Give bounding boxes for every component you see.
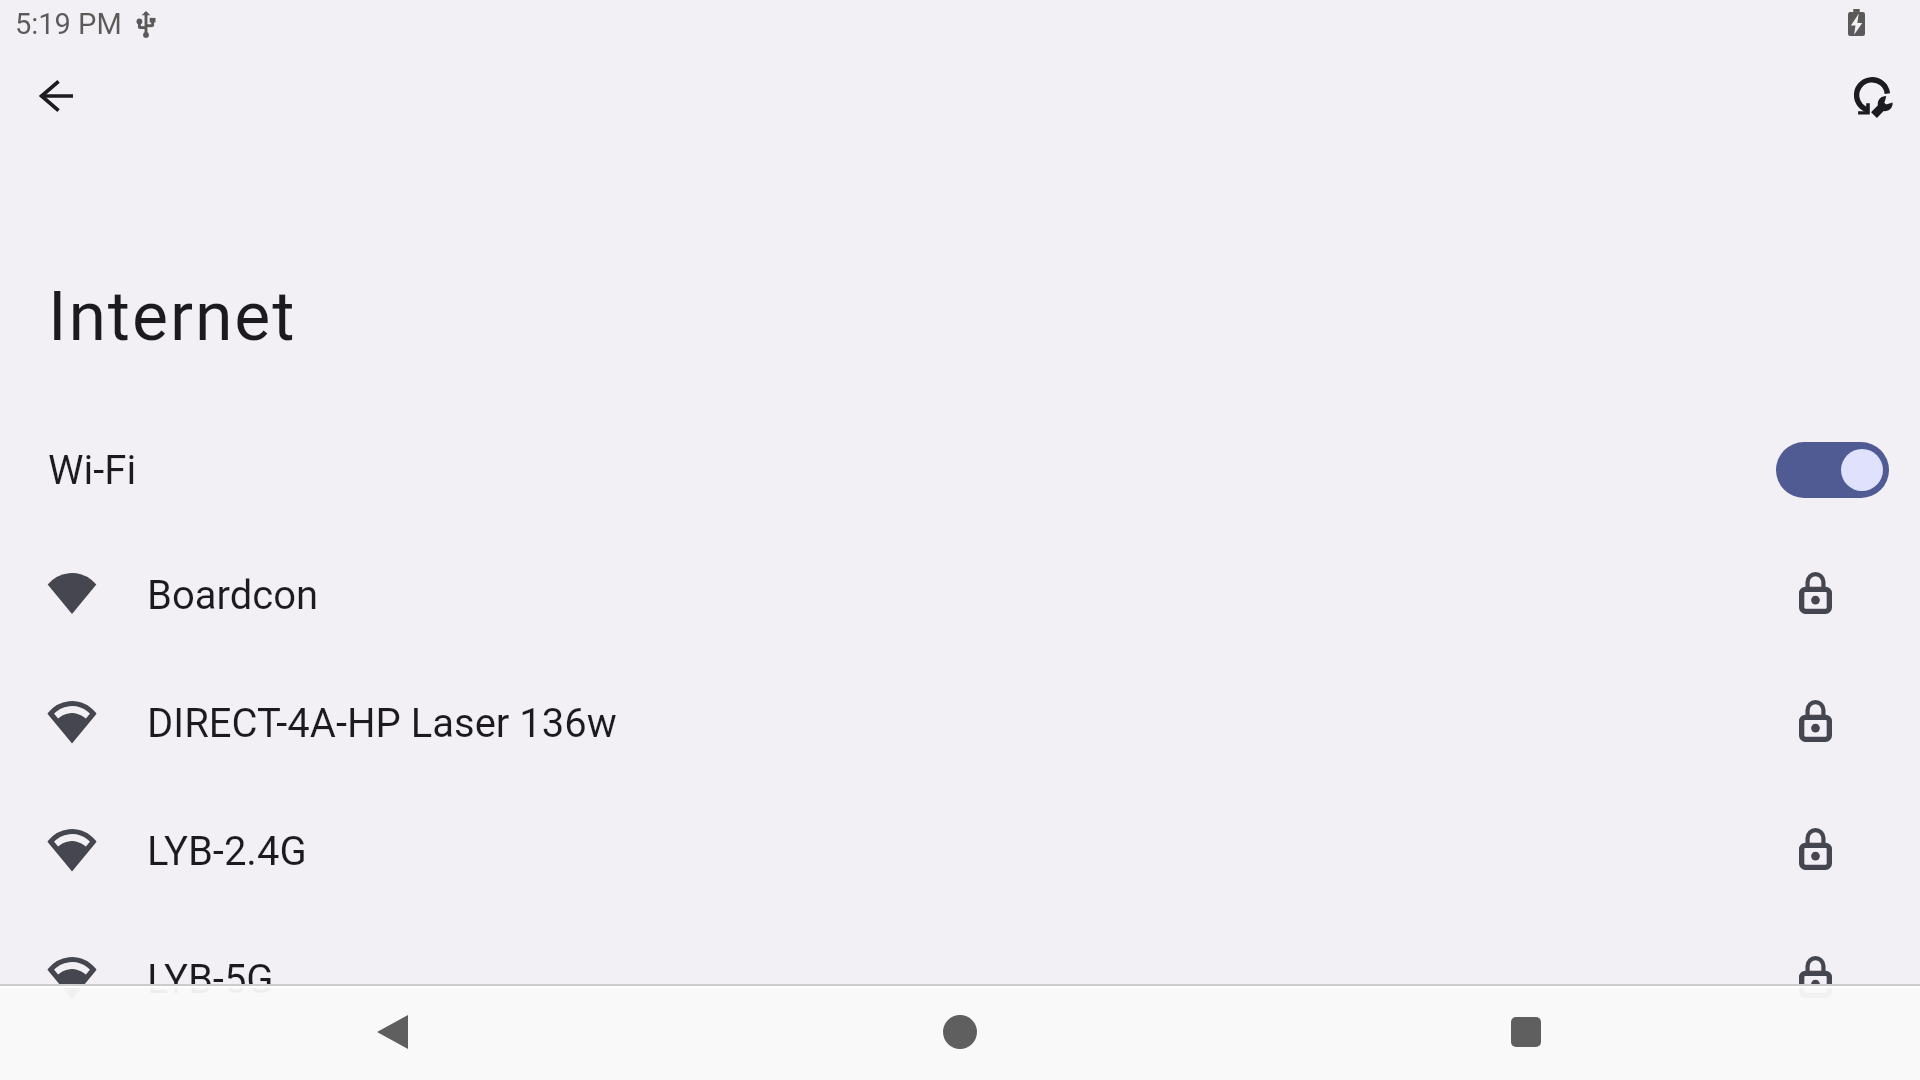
button[interactable]: Recent apps xyxy=(1486,992,1566,1072)
button[interactable]: LYB-5G xyxy=(0,915,1920,1043)
button[interactable]: Back xyxy=(352,992,432,1072)
button[interactable]: DIRECT-4A-HP Laser 136w xyxy=(0,659,1920,787)
staticText: Internet xyxy=(48,277,297,357)
staticText: Boardcon xyxy=(147,572,319,619)
button[interactable]: Fix connectivity xyxy=(1837,60,1909,132)
button[interactable]: Wi-Fi on xyxy=(1776,442,1889,498)
staticText: LYB-5G xyxy=(147,956,274,1003)
button[interactable]: Boardcon xyxy=(0,531,1920,659)
button[interactable]: Home xyxy=(920,992,1000,1072)
staticText: LYB-2.4G xyxy=(147,828,307,875)
button[interactable]: Navigate up xyxy=(20,60,92,132)
button[interactable]: LYB-2.4G xyxy=(0,787,1920,915)
staticText: Wi-Fi xyxy=(48,447,137,494)
button[interactable]: Wi-Fi xyxy=(0,420,1920,520)
staticText: 5:19 PM xyxy=(15,7,122,41)
staticText: DIRECT-4A-HP Laser 136w xyxy=(147,700,617,747)
